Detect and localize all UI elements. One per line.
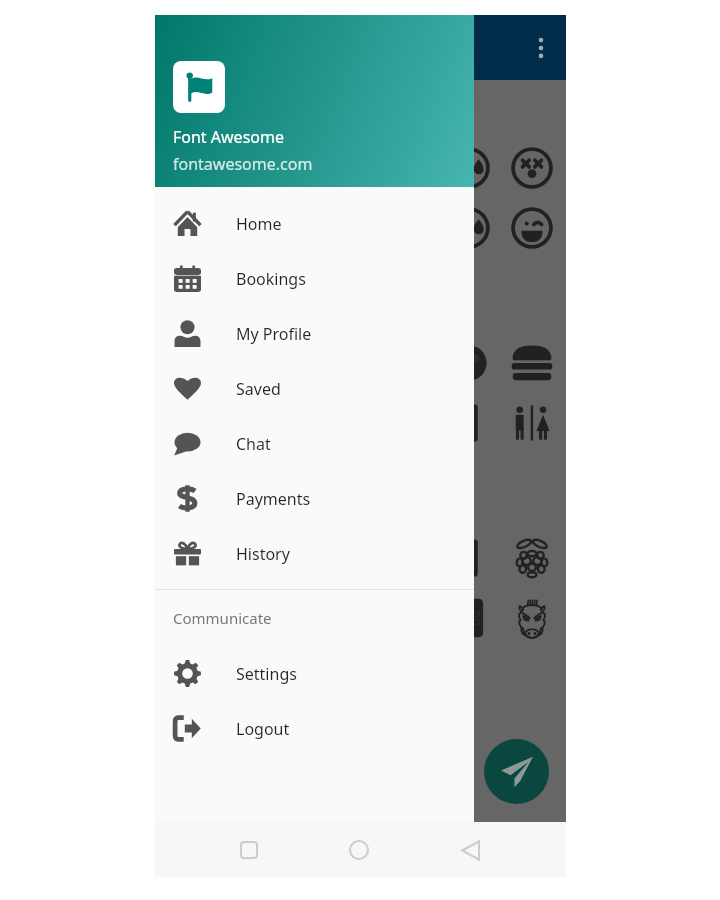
button[interactable]: icon	[445, 339, 493, 387]
button[interactable]: Settings	[155, 646, 474, 701]
button[interactable]: icon	[256, 144, 304, 192]
button[interactable]: icon	[155, 339, 178, 387]
button[interactable]: icon	[508, 339, 556, 387]
staticText: Communicate	[173, 608, 272, 628]
staticText: fontawesome.com	[173, 153, 313, 175]
button[interactable]: icon	[155, 534, 178, 582]
button[interactable]: icon	[155, 204, 178, 252]
button[interactable]: icon	[445, 204, 493, 252]
button[interactable]: History	[155, 526, 474, 581]
button[interactable]: icon	[193, 399, 241, 447]
button[interactable]: icon	[445, 399, 493, 447]
staticText: Settings	[236, 663, 297, 685]
button[interactable]: icon	[445, 144, 493, 192]
staticText: Logout	[236, 718, 290, 740]
staticText: Bookings	[236, 268, 306, 290]
button[interactable]: My Profile	[155, 306, 474, 361]
button[interactable]: icon	[256, 534, 304, 582]
button[interactable]: icon	[508, 594, 556, 642]
button[interactable]: icon	[193, 339, 241, 387]
button[interactable]: Back	[448, 827, 494, 873]
button[interactable]: icon	[445, 594, 493, 642]
button[interactable]: Logout	[155, 701, 474, 756]
staticText: Chat	[236, 433, 271, 455]
staticText: History	[236, 543, 290, 565]
button[interactable]: icon	[319, 144, 367, 192]
staticText: Payments	[236, 488, 311, 510]
button[interactable]: More options	[517, 24, 565, 72]
staticText: My Profile	[236, 323, 312, 345]
button[interactable]: icon	[193, 144, 241, 192]
button[interactable]: icon	[155, 144, 178, 192]
button[interactable]: icon	[193, 204, 241, 252]
button[interactable]: Home	[336, 827, 382, 873]
staticText: Saved	[236, 378, 281, 400]
button[interactable]: Chat	[155, 416, 474, 471]
button[interactable]: icon	[256, 339, 304, 387]
button[interactable]: icon	[155, 594, 178, 642]
staticText: Font Awesome	[173, 126, 284, 148]
button[interactable]: Payments	[155, 471, 474, 526]
button[interactable]: icon	[508, 204, 556, 252]
button[interactable]: icon	[508, 399, 556, 447]
button[interactable]: icon	[256, 204, 304, 252]
button[interactable]: icon	[382, 144, 430, 192]
button[interactable]: icon	[193, 534, 241, 582]
button[interactable]: icon	[256, 594, 304, 642]
button[interactable]: Home	[155, 196, 474, 251]
button[interactable]: icon	[193, 594, 241, 642]
button[interactable]: Bookings	[155, 251, 474, 306]
button[interactable]: Send	[484, 739, 549, 804]
button[interactable]: Recents	[226, 827, 272, 873]
staticText: Home	[236, 213, 282, 235]
button[interactable]: icon	[256, 399, 304, 447]
button[interactable]: Saved	[155, 361, 474, 416]
button[interactable]: icon	[445, 534, 493, 582]
button[interactable]: icon	[155, 399, 178, 447]
button[interactable]: icon	[508, 144, 556, 192]
button[interactable]: icon	[508, 534, 556, 582]
